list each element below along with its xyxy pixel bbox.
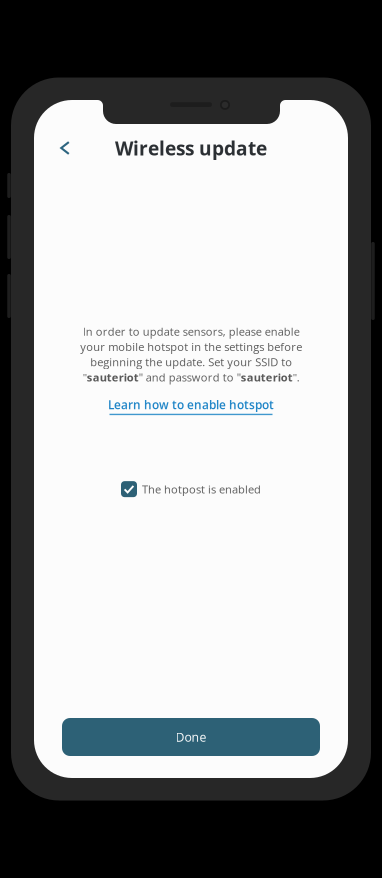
button[interactable]: Done bbox=[62, 718, 320, 756]
button[interactable]: Learn how to enable hotspot bbox=[108, 397, 274, 415]
staticText: The hotpost is enabled bbox=[142, 482, 261, 497]
staticText: Learn how to enable hotspot bbox=[108, 397, 274, 413]
button[interactable]: The hotpost is enabled bbox=[121, 479, 261, 499]
staticText: In order to update sensors, please enabl… bbox=[80, 324, 302, 385]
staticText: Done bbox=[175, 729, 206, 745]
staticText: Wireless update bbox=[115, 135, 267, 161]
button[interactable]: Back bbox=[34, 126, 96, 170]
